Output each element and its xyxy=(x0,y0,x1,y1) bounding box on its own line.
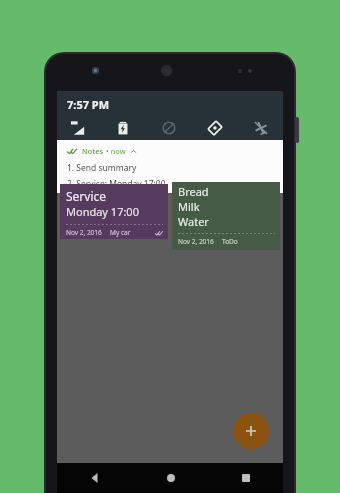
button[interactable]: Bread xyxy=(172,182,280,250)
staticText: Nov 2, 2016 xyxy=(178,237,214,246)
staticText: Milk xyxy=(178,199,200,214)
staticText: Service xyxy=(66,188,107,204)
button[interactable]: Recents xyxy=(208,463,283,493)
button[interactable]: Do not disturb xyxy=(161,120,177,136)
button[interactable]: Add note xyxy=(233,413,269,449)
staticText: 2. Service: Monday 17:00 xyxy=(67,178,166,190)
button[interactable]: Mobile data LTE xyxy=(69,120,85,136)
button[interactable]: Auto rotate xyxy=(207,120,223,136)
button[interactable]: Notes xyxy=(57,140,283,193)
staticText: Water xyxy=(178,214,209,229)
button[interactable]: Service xyxy=(60,184,168,239)
staticText: Nov 2, 2016 xyxy=(66,228,102,237)
staticText: Monday 17:00 xyxy=(66,204,139,219)
button[interactable]: Airplane mode xyxy=(253,120,269,136)
staticText: Notes xyxy=(82,146,104,156)
staticText: 7:57 PM xyxy=(67,97,110,112)
staticText: ToDo xyxy=(222,237,238,246)
staticText: Bread xyxy=(178,184,209,199)
staticText: 1. Send summary xyxy=(67,162,137,174)
button[interactable]: Home xyxy=(133,463,208,493)
button[interactable]: Back xyxy=(57,463,133,493)
staticText: • now xyxy=(104,146,126,156)
staticText: My car xyxy=(110,228,131,237)
button[interactable]: Battery saver xyxy=(115,120,131,136)
